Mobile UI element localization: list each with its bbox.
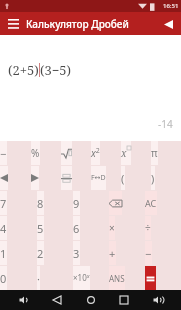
button[interactable]: 3 [73,241,80,265]
staticText: 1 [0,246,7,261]
staticText: x [121,146,127,160]
button[interactable]: Square root [61,141,72,165]
button[interactable]: 1 [0,241,7,265]
button[interactable]: Equals [145,266,156,290]
button[interactable]: Volume down [14,290,34,310]
button[interactable]: 4 [0,216,7,240]
button[interactable]: − [0,141,7,165]
button[interactable]: ANS [109,266,125,290]
staticText: 8 [37,196,44,211]
staticText: x2 [91,146,100,160]
staticText: 6 [73,221,80,236]
button[interactable]: Times ten to the power [73,266,90,290]
button[interactable]: F↔D [91,166,106,190]
button[interactable]: Collapse keypad [159,15,177,33]
button[interactable]: ( [121,166,125,190]
staticText: Калькулятор Дробей [26,17,129,31]
button[interactable]: Cursor right [31,166,39,190]
staticText: AC [145,197,157,209]
staticText: − [0,146,7,161]
staticText: ÷ [145,221,151,235]
button[interactable]: 5 [37,216,44,240]
staticText: 5 [37,221,44,236]
staticText: F↔D [91,173,106,183]
staticText: + [109,246,116,261]
staticText: ×10x [73,272,90,284]
button[interactable]: 0 [0,266,7,290]
button[interactable]: × [109,216,115,240]
button[interactable]: 2 [37,241,44,265]
staticText: π [151,146,158,160]
button[interactable]: Volume up [148,290,168,310]
button[interactable]: 8 [37,191,44,215]
staticText: 16:51 [163,2,179,10]
button[interactable]: − [145,241,152,265]
staticText: (3−5) [40,61,72,79]
staticText: · [37,271,40,286]
staticText: ) [151,171,155,186]
button[interactable]: x2 [91,141,100,165]
staticText: -14 [158,117,173,131]
button[interactable]: + [109,241,116,265]
button[interactable]: 6 [73,216,80,240]
button[interactable]: ÷ [145,216,151,240]
staticText: ANS [109,273,125,284]
button[interactable]: Cursor left [0,166,8,190]
staticText: × [109,221,115,235]
button[interactable]: ) [151,166,155,190]
staticText: 7 [0,196,7,211]
button[interactable]: · [37,266,40,290]
staticText: 0 [0,271,7,286]
button[interactable]: Recents [114,290,134,310]
staticText: % [31,146,40,160]
staticText: ( [121,171,125,186]
button[interactable]: Back [47,290,67,310]
button[interactable]: AC [145,191,157,215]
button[interactable]: Menu [4,15,22,33]
button[interactable]: 9 [73,191,80,215]
button[interactable]: % [31,141,40,165]
button[interactable]: Delete [109,191,122,215]
button[interactable]: 7 [0,191,7,215]
button[interactable]: Fraction [61,166,72,190]
staticText: (2+5) [8,61,39,79]
button[interactable]: π [151,141,158,165]
staticText: 2 [37,246,44,261]
button[interactable]: Home [81,290,101,310]
staticText: 3 [73,246,80,261]
staticText: − [145,246,152,261]
staticText: 4 [0,221,7,236]
staticText: 9 [73,196,80,211]
button[interactable]: Power [121,141,131,165]
